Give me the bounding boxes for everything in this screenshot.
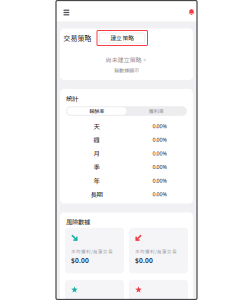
button[interactable]: 建立策略	[97, 30, 147, 45]
staticText: 週	[93, 135, 99, 144]
staticText: 尚未建立策略。	[105, 55, 147, 64]
button[interactable]: Menu	[56, 0, 80, 21]
staticText: 無數據顯示	[114, 66, 139, 74]
staticText: $0.00	[71, 256, 89, 265]
staticText: 0.00%	[152, 191, 166, 198]
staticText: 0.00%	[152, 136, 166, 143]
button[interactable]: 獲利率	[126, 107, 186, 115]
staticText: 0.00%	[152, 150, 166, 157]
staticText: 0.00%	[152, 163, 166, 170]
button[interactable]: Notifications	[177, 0, 197, 21]
staticText: 季	[93, 162, 99, 172]
staticText: 報酬率	[89, 107, 104, 115]
staticText: 獲利率	[149, 107, 164, 115]
staticText: 年	[93, 176, 99, 185]
button[interactable]: 報酬率	[67, 107, 126, 115]
staticText: $0.00	[135, 256, 153, 265]
staticText: 交易策略	[63, 33, 91, 43]
staticText: 月	[93, 149, 99, 158]
staticText: 0.00%	[152, 123, 166, 130]
staticText: 統計	[66, 94, 78, 103]
staticText: 建立策略	[110, 34, 134, 42]
staticText: 0.00%	[152, 177, 166, 184]
staticText: 天	[93, 121, 99, 131]
staticText: 風險數據	[66, 217, 90, 226]
staticText: 長期	[90, 189, 102, 199]
staticText: 平均獲利/每筆交易	[71, 248, 113, 255]
staticText: 平均獲利/每筆交易	[135, 248, 177, 255]
